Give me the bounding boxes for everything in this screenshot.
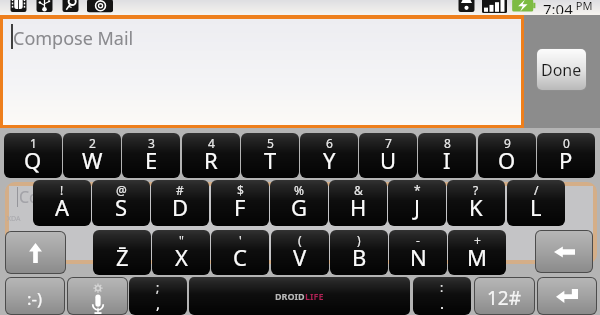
button[interactable]: Backspace xyxy=(536,231,592,272)
button[interactable]: Voice input xyxy=(68,278,127,314)
button[interactable]: " xyxy=(152,230,210,275)
staticText: ' xyxy=(239,232,242,248)
staticText: 8 xyxy=(444,135,451,151)
staticText: X xyxy=(175,242,188,272)
staticText: . xyxy=(440,293,445,313)
staticText: XDA xyxy=(7,214,21,224)
staticText: 5 xyxy=(267,135,274,151)
button[interactable]: 3 xyxy=(122,133,180,178)
button[interactable]: Compose Mail xyxy=(0,15,524,130)
button[interactable]: @ xyxy=(92,180,150,226)
button[interactable]: - xyxy=(389,230,447,275)
staticText: D xyxy=(172,192,189,222)
staticText: 3 xyxy=(148,135,155,151)
staticText: Y xyxy=(323,145,336,175)
button[interactable]: 2 xyxy=(63,133,121,178)
staticText: J xyxy=(414,192,421,222)
button[interactable]: 0 xyxy=(537,133,595,178)
staticText: F xyxy=(234,192,246,222)
button[interactable]: / xyxy=(507,180,565,226)
staticText: V xyxy=(293,242,307,272)
staticText: , xyxy=(156,293,161,313)
staticText: 7 xyxy=(385,135,392,151)
button[interactable]: ) xyxy=(330,230,388,275)
staticText: T xyxy=(264,145,277,175)
button[interactable]: $ xyxy=(211,180,269,226)
button[interactable]: 6 xyxy=(300,133,358,178)
staticText: PM xyxy=(573,0,593,13)
staticText: # xyxy=(176,182,184,198)
button[interactable]: + xyxy=(448,230,506,275)
staticText: 9 xyxy=(504,135,511,151)
button[interactable]: Emoticons xyxy=(6,278,64,314)
staticText: C xyxy=(233,242,247,272)
button[interactable]: * xyxy=(388,180,446,226)
button[interactable]: 9 xyxy=(478,133,536,178)
staticText: 7:04 xyxy=(543,0,573,14)
staticText: $ xyxy=(237,182,244,198)
button[interactable]: Z̄ xyxy=(93,230,151,275)
button[interactable]: 8 xyxy=(418,133,476,178)
staticText: L xyxy=(530,192,542,222)
button[interactable]: ( xyxy=(271,230,329,275)
staticText: N xyxy=(410,242,427,272)
staticText: / xyxy=(534,182,539,198)
staticText: 12# xyxy=(487,285,522,311)
staticText: U xyxy=(380,145,397,175)
button[interactable]: 5 xyxy=(241,133,299,178)
button[interactable]: % xyxy=(270,180,328,226)
button[interactable]: Space xyxy=(189,277,410,315)
staticText: 0 xyxy=(563,135,570,151)
staticText: P xyxy=(559,145,573,175)
button[interactable]: Symbols xyxy=(475,278,534,314)
staticText: ) xyxy=(357,232,361,248)
staticText: S xyxy=(115,192,128,222)
button[interactable]: Enter xyxy=(538,278,596,314)
staticText: @ xyxy=(116,182,127,198)
staticText: Q xyxy=(24,145,42,175)
staticText: K xyxy=(469,192,483,222)
staticText: 2 xyxy=(89,135,96,151)
staticText: 1 xyxy=(30,135,37,151)
staticText: B xyxy=(352,242,367,272)
staticText: Done xyxy=(541,59,582,81)
button[interactable]: ; xyxy=(129,277,187,315)
staticText: W xyxy=(82,145,103,175)
staticText: R xyxy=(204,145,218,175)
staticText: ; xyxy=(156,279,160,295)
staticText: & xyxy=(354,182,363,198)
staticText: G xyxy=(291,192,308,222)
staticText: : xyxy=(440,279,444,295)
staticText: M xyxy=(467,242,487,272)
staticText: LIFE xyxy=(305,290,324,302)
staticText: * xyxy=(414,182,421,198)
staticText: Compose Mail xyxy=(13,26,134,51)
button[interactable]: & xyxy=(329,180,387,226)
button[interactable]: Shift xyxy=(6,232,65,273)
staticText: O xyxy=(498,145,516,175)
staticText: - xyxy=(416,232,420,248)
staticText: Co xyxy=(19,186,39,208)
staticText: 4 xyxy=(208,135,215,151)
button[interactable]: 1 xyxy=(4,133,62,178)
staticText: ! xyxy=(60,182,64,198)
button[interactable]: ? xyxy=(447,180,505,226)
button[interactable]: ' xyxy=(211,230,269,275)
button[interactable]: 7 xyxy=(359,133,417,178)
button[interactable]: # xyxy=(151,180,209,226)
staticText: DROID xyxy=(275,290,305,302)
staticText: A xyxy=(55,192,70,222)
staticText: 6 xyxy=(326,135,333,151)
button[interactable]: ! xyxy=(33,180,91,226)
staticText: ( xyxy=(298,232,302,248)
button[interactable]: 4 xyxy=(182,133,240,178)
staticText: Z̄ xyxy=(116,242,129,272)
staticText: " xyxy=(179,232,184,248)
button[interactable]: : xyxy=(413,277,471,315)
staticText: :-) xyxy=(27,287,43,310)
staticText: + xyxy=(474,232,481,248)
staticText: H xyxy=(350,192,367,222)
staticText: % xyxy=(294,182,304,198)
button[interactable]: Done xyxy=(537,49,586,90)
staticText: I xyxy=(443,145,451,175)
